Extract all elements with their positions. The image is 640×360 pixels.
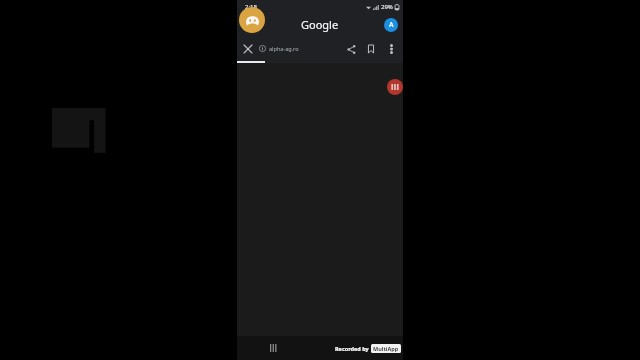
button[interactable]: Discord xyxy=(239,7,265,33)
button[interactable]: alpha-ag.ro xyxy=(259,45,341,52)
staticText: Recorded by xyxy=(335,345,369,352)
staticText: alpha-ag.ro xyxy=(269,45,299,52)
button[interactable]: Close xyxy=(237,38,259,60)
button[interactable]: Account xyxy=(384,18,398,32)
button[interactable]: Recent apps xyxy=(265,340,281,356)
staticText: 2:18 xyxy=(245,3,257,11)
button[interactable]: Share xyxy=(341,39,361,59)
button[interactable]: More options xyxy=(381,39,401,59)
staticText: Google xyxy=(301,17,339,32)
staticText: 29% xyxy=(381,3,393,11)
button[interactable]: Bookmark xyxy=(361,39,381,59)
button[interactable]: Notification badge xyxy=(387,79,403,95)
staticText: MultiApp xyxy=(373,345,399,352)
staticText: A xyxy=(389,20,394,30)
